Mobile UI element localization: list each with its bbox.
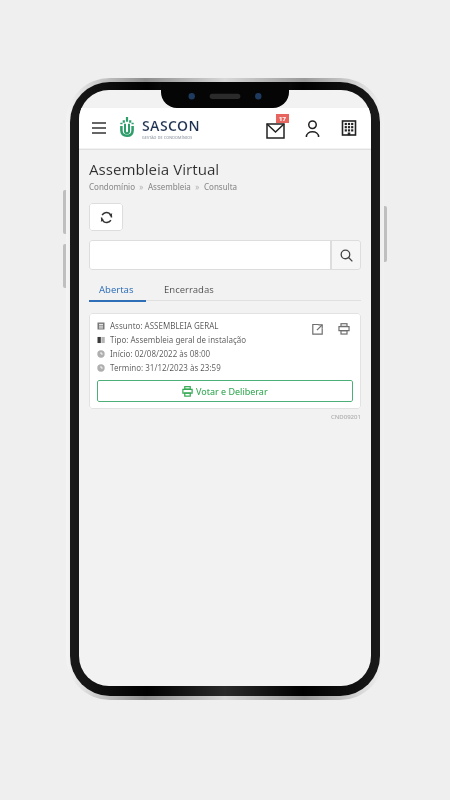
button[interactable]: Encerradas: [154, 279, 224, 300]
staticText: 17: [279, 115, 286, 123]
staticText: GESTÃO DE CONDOMÍNIOS: [142, 135, 193, 140]
button[interactable]: Refresh: [89, 203, 123, 231]
button[interactable]: [89, 240, 331, 270]
staticText: Votar e Deliberar: [196, 385, 268, 397]
button[interactable]: Condomínio: [89, 181, 135, 192]
staticText: Encerradas: [164, 283, 214, 296]
staticText: Consulta: [204, 181, 238, 192]
staticText: SASCON: [142, 116, 200, 135]
staticText: »: [191, 181, 204, 192]
button[interactable]: Open: [308, 320, 326, 338]
button[interactable]: Search: [331, 240, 361, 270]
button[interactable]: Profile: [299, 115, 325, 141]
button[interactable]: Condominium: [336, 115, 362, 141]
staticText: Assunto: ASSEMBLEIA GERAL: [110, 320, 219, 331]
staticText: CND09201: [331, 413, 361, 421]
button[interactable]: Print: [335, 320, 353, 338]
staticText: Termino: 31/12/2023 às 23:59: [110, 362, 221, 373]
staticText: Tipo: Assembleia geral de instalação: [110, 334, 247, 345]
staticText: Abertas: [99, 283, 134, 296]
button[interactable]: Abertas: [89, 279, 144, 300]
staticText: Assembleia Virtual: [89, 159, 220, 179]
button[interactable]: Messages: [262, 115, 288, 141]
staticText: »: [135, 181, 148, 192]
button[interactable]: Votar e Deliberar: [97, 380, 353, 402]
staticText: Início: 02/08/2022 às 08:00: [110, 348, 211, 359]
button[interactable]: Assembleia: [148, 181, 191, 192]
button[interactable]: Menu: [88, 117, 110, 139]
